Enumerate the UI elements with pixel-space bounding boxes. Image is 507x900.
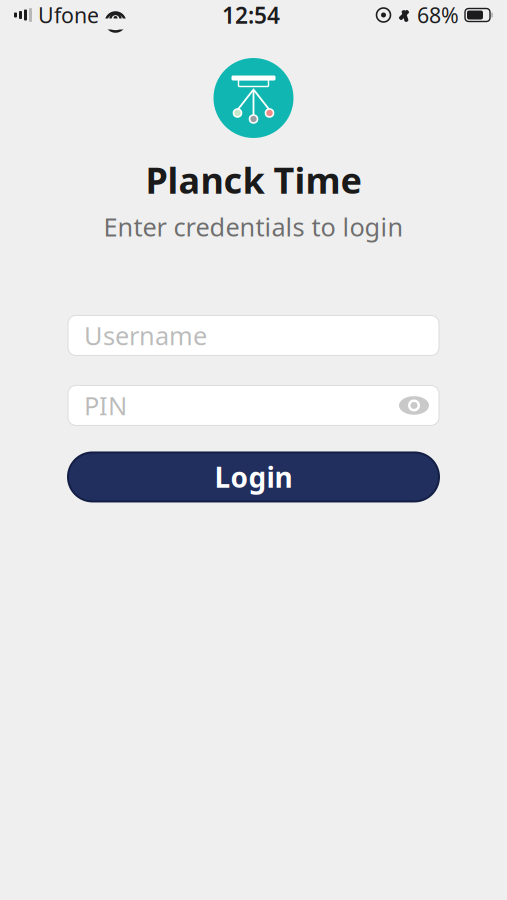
button[interactable]: Login <box>68 452 439 501</box>
staticText: 68% <box>417 1 459 29</box>
button[interactable]: Show PIN <box>395 386 433 424</box>
staticText: PIN <box>84 389 127 422</box>
staticText: 12:54 <box>222 0 280 30</box>
staticText: Login <box>214 458 292 496</box>
staticText: Ufone <box>38 1 99 29</box>
staticText: Planck Time <box>145 156 361 204</box>
staticText: Enter credentials to login <box>103 210 403 243</box>
staticText: Username <box>84 319 207 352</box>
